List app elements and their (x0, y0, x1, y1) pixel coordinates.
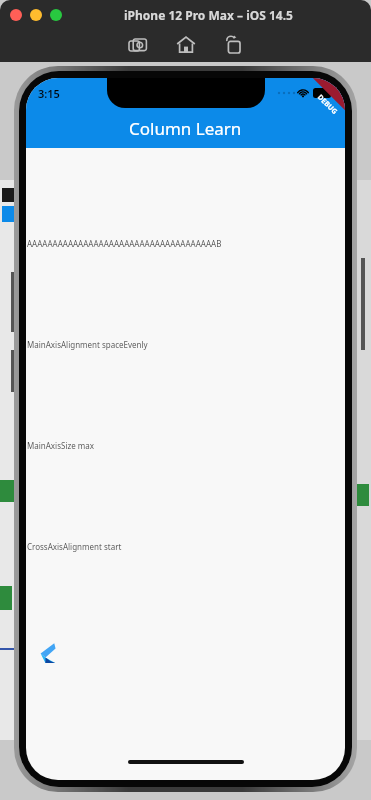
button[interactable]: Close (10, 9, 22, 21)
button[interactable]: Rotate (221, 32, 247, 58)
button[interactable]: Maximize (50, 9, 62, 21)
button[interactable]: Screenshot (125, 32, 151, 58)
staticText: MainAxisSize max (27, 440, 94, 451)
staticText: AAAAAAAAAAAAAAAAAAAAAAAAAAAAAAAAAAAAAB (27, 238, 222, 249)
button[interactable]: Minimize (30, 9, 42, 21)
staticText: iPhone 12 Pro Max – iOS 14.5 (124, 7, 293, 23)
staticText: MainAxisAlignment spaceEvenly (27, 339, 148, 350)
staticText: Column Learn (129, 117, 242, 140)
button[interactable]: CrossAxisAlignment start (26, 541, 345, 552)
button[interactable]: MainAxisSize max (26, 440, 345, 451)
staticText: 3:15 (38, 86, 60, 101)
button[interactable] (34, 642, 56, 664)
button[interactable]: MainAxisAlignment spaceEvenly (26, 339, 345, 350)
staticText: CrossAxisAlignment start (27, 541, 122, 552)
staticText: DEBUG (315, 93, 340, 117)
button[interactable]: AAAAAAAAAAAAAAAAAAAAAAAAAAAAAAAAAAAAAB (26, 238, 345, 249)
button[interactable]: Home (173, 32, 199, 58)
